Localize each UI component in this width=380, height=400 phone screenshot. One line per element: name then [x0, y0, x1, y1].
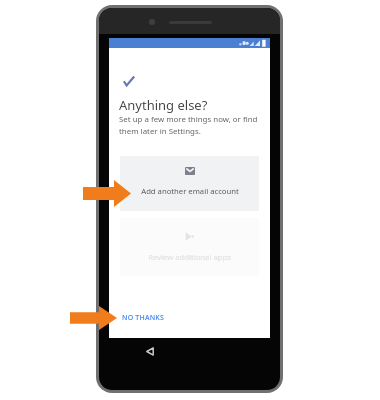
- staticText: Anything else?: [119, 96, 208, 114]
- button[interactable]: NO THANKS: [118, 310, 164, 324]
- staticText: Review additional apps: [148, 252, 231, 262]
- button[interactable]: Back: [139, 340, 161, 362]
- staticText: Set up a few more things now, or find th…: [119, 114, 259, 136]
- staticText: NO THANKS: [122, 313, 165, 323]
- button[interactable]: Review additional apps: [120, 218, 259, 276]
- staticText: Add another email account: [141, 186, 239, 196]
- button[interactable]: Add another email account: [120, 156, 259, 211]
